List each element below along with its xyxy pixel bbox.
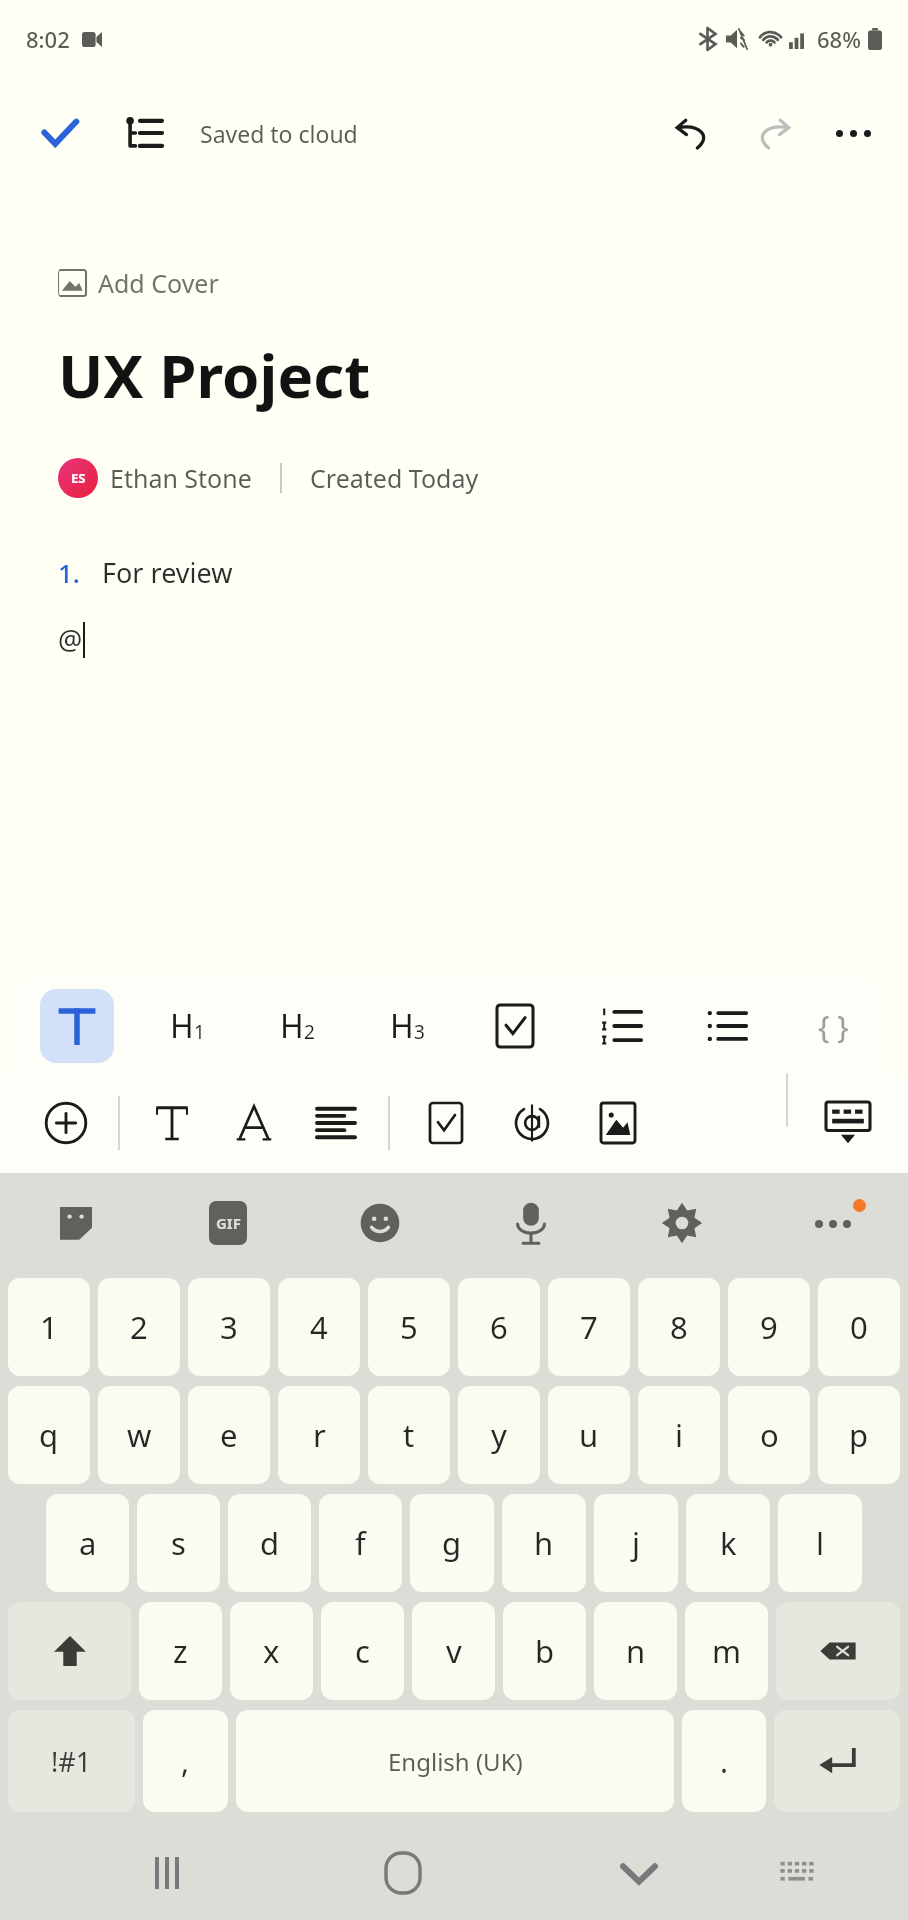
button[interactable]: Hide keyboard bbox=[788, 1073, 908, 1173]
button[interactable]: u bbox=[548, 1386, 630, 1484]
button[interactable]: Insert image bbox=[584, 1089, 652, 1157]
button[interactable]: Outline bbox=[112, 102, 174, 164]
button[interactable]: z bbox=[139, 1602, 222, 1700]
button[interactable]: Checklist bbox=[480, 991, 550, 1061]
staticText: , bbox=[181, 1741, 190, 1782]
button[interactable]: i bbox=[638, 1386, 720, 1484]
button[interactable]: v bbox=[412, 1602, 495, 1700]
button[interactable]: s bbox=[137, 1494, 220, 1592]
button[interactable]: 2 bbox=[98, 1278, 180, 1376]
staticText: g bbox=[442, 1522, 462, 1564]
button[interactable]: . bbox=[682, 1710, 766, 1812]
staticText: 3 bbox=[220, 1306, 238, 1348]
button[interactable]: H bbox=[260, 991, 334, 1061]
button[interactable]: Enter bbox=[774, 1710, 900, 1812]
staticText: a bbox=[79, 1522, 97, 1564]
button[interactable]: Add Cover bbox=[58, 266, 219, 300]
button[interactable]: 1 bbox=[8, 1278, 90, 1376]
button[interactable]: Add checkbox bbox=[412, 1089, 480, 1157]
button[interactable]: Bulleted list bbox=[692, 991, 762, 1061]
button[interactable]: 5 bbox=[368, 1278, 450, 1376]
button[interactable]: Switch keyboard bbox=[757, 1833, 837, 1913]
staticText: c bbox=[355, 1630, 370, 1672]
button[interactable]: g bbox=[410, 1494, 494, 1592]
staticText: Add Cover bbox=[98, 266, 219, 300]
button[interactable]: o bbox=[728, 1386, 810, 1484]
staticText: Created Today bbox=[310, 461, 479, 495]
button[interactable]: H bbox=[150, 991, 224, 1061]
staticText: w bbox=[127, 1414, 152, 1456]
button[interactable]: Numbered list bbox=[586, 991, 656, 1061]
button[interactable]: H bbox=[370, 991, 444, 1061]
button[interactable]: e bbox=[188, 1386, 270, 1484]
staticText: 6 bbox=[490, 1306, 508, 1348]
button[interactable]: mic bbox=[455, 1173, 606, 1273]
button[interactable]: Undo bbox=[660, 100, 726, 166]
button[interactable]: Code block bbox=[798, 991, 868, 1061]
button[interactable]: d bbox=[228, 1494, 311, 1592]
button[interactable]: l bbox=[778, 1494, 862, 1592]
button[interactable]: Close keyboard bbox=[599, 1833, 679, 1913]
button[interactable]: 4 bbox=[278, 1278, 360, 1376]
button[interactable]: a bbox=[46, 1494, 129, 1592]
button[interactable]: m bbox=[685, 1602, 768, 1700]
staticText: H bbox=[170, 1004, 194, 1048]
button[interactable]: sticker bbox=[0, 1173, 152, 1273]
button[interactable]: c bbox=[321, 1602, 404, 1700]
button[interactable]: !#1 bbox=[8, 1710, 135, 1812]
button[interactable]: f bbox=[319, 1494, 402, 1592]
button[interactable]: 6 bbox=[458, 1278, 540, 1376]
button[interactable]: Recents bbox=[127, 1833, 207, 1913]
button[interactable]: 0 bbox=[818, 1278, 900, 1376]
button[interactable]: Mention bbox=[498, 1089, 566, 1157]
button[interactable]: y bbox=[458, 1386, 540, 1484]
staticText: 68% bbox=[817, 24, 861, 54]
button[interactable]: 3 bbox=[188, 1278, 270, 1376]
button[interactable]: t bbox=[368, 1386, 450, 1484]
button[interactable]: 8 bbox=[638, 1278, 720, 1376]
button[interactable]: Insert bbox=[30, 1087, 102, 1159]
button[interactable]: b bbox=[503, 1602, 586, 1700]
button[interactable]: , bbox=[143, 1710, 228, 1812]
button[interactable]: More options bbox=[820, 100, 886, 166]
staticText: { } bbox=[818, 1006, 849, 1047]
staticText: 2 bbox=[130, 1306, 148, 1348]
button[interactable] bbox=[8, 1602, 131, 1700]
staticText: o bbox=[760, 1414, 779, 1456]
staticText: 1. bbox=[58, 555, 80, 590]
button[interactable]: Font bbox=[220, 1089, 288, 1157]
button[interactable]: Text style bbox=[138, 1089, 206, 1157]
staticText: v bbox=[446, 1630, 462, 1672]
staticText: !#1 bbox=[51, 1743, 92, 1780]
button[interactable]: settings bbox=[606, 1173, 757, 1273]
button[interactable]: h bbox=[502, 1494, 586, 1592]
button[interactable]: Redo bbox=[740, 100, 806, 166]
staticText: y bbox=[491, 1414, 507, 1456]
staticText: Ethan Stone bbox=[110, 461, 252, 495]
staticText: GIF bbox=[216, 1213, 241, 1233]
button[interactable]: English (UK) bbox=[236, 1710, 674, 1812]
button[interactable]: Body text bbox=[40, 989, 114, 1063]
staticText: f bbox=[355, 1522, 366, 1564]
staticText: H bbox=[280, 1004, 304, 1048]
button[interactable]: j bbox=[594, 1494, 678, 1592]
button[interactable]: k bbox=[686, 1494, 770, 1592]
button[interactable]: 9 bbox=[728, 1278, 810, 1376]
button[interactable]: more bbox=[757, 1173, 908, 1273]
button[interactable]: 7 bbox=[548, 1278, 630, 1376]
button[interactable]: r bbox=[278, 1386, 360, 1484]
button[interactable]: Done bbox=[30, 103, 90, 163]
button[interactable]: n bbox=[594, 1602, 677, 1700]
button[interactable]: Align bbox=[302, 1089, 370, 1157]
staticText: x bbox=[263, 1630, 280, 1672]
button[interactable]: q bbox=[8, 1386, 90, 1484]
button[interactable]: gif bbox=[152, 1173, 304, 1273]
staticText: Saved to cloud bbox=[200, 118, 358, 149]
button[interactable]: emoji bbox=[304, 1173, 455, 1273]
button[interactable]: p bbox=[818, 1386, 900, 1484]
button[interactable]: x bbox=[230, 1602, 313, 1700]
staticText: UX Project bbox=[58, 334, 371, 416]
button[interactable]: w bbox=[98, 1386, 180, 1484]
button[interactable]: Home bbox=[363, 1833, 443, 1913]
button[interactable] bbox=[776, 1602, 900, 1700]
